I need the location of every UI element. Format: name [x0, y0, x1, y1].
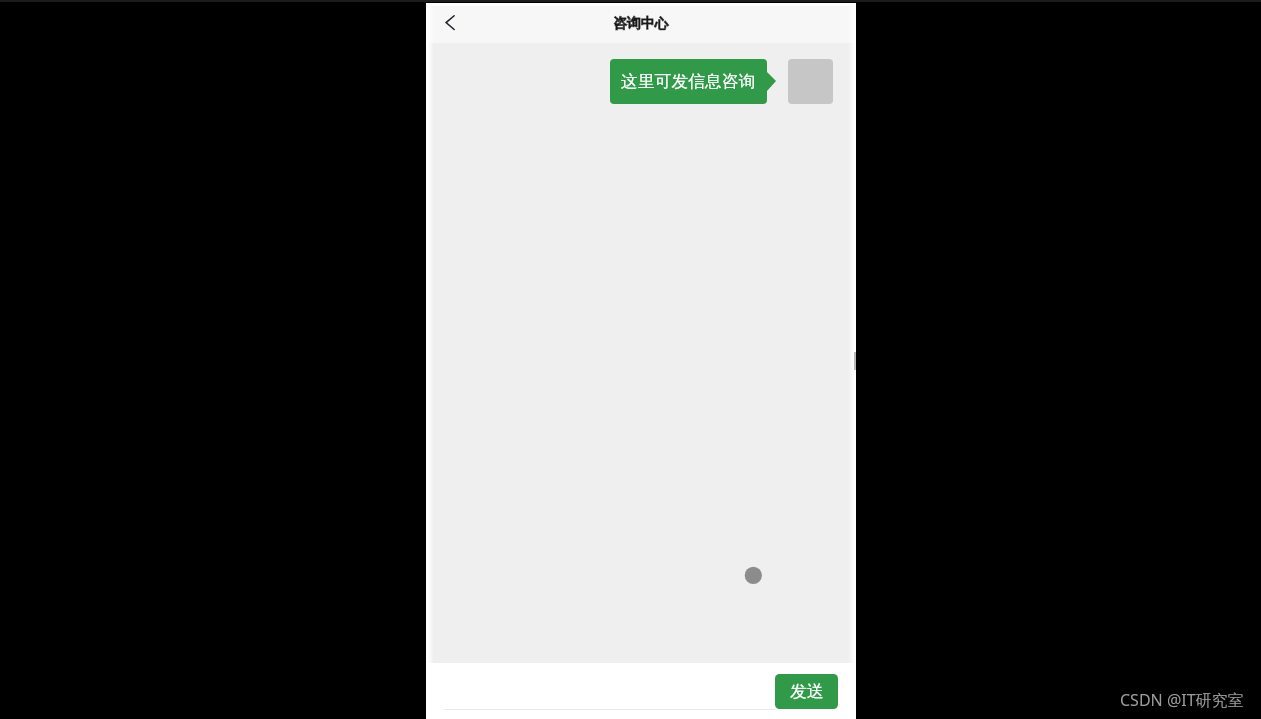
- staticText: 咨询中心: [613, 15, 669, 32]
- staticText: 这里可发信息咨询: [621, 71, 756, 92]
- button[interactable]: 发送: [775, 674, 838, 709]
- staticText: 发送: [790, 681, 824, 702]
- staticText: 咨询中心: [613, 15, 669, 32]
- button[interactable]: 这里可发信息咨询: [610, 59, 767, 104]
- staticText: CSDN @IT研究室: [1120, 689, 1244, 711]
- button[interactable]: Back: [434, 7, 466, 39]
